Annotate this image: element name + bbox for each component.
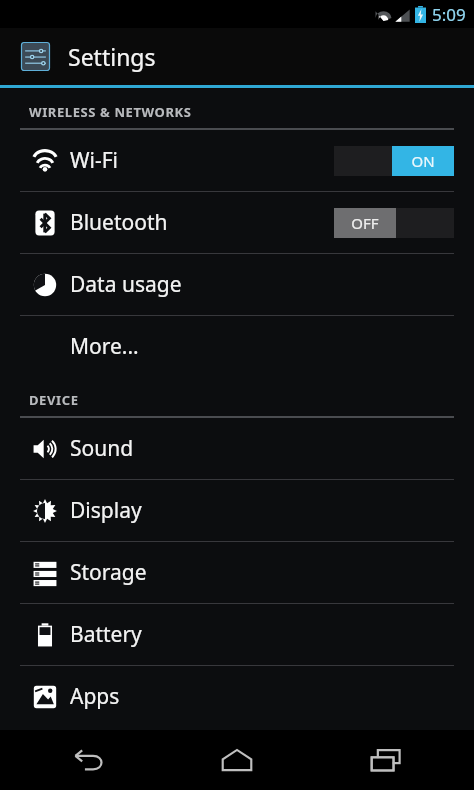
button[interactable]: Back: [29, 730, 149, 790]
staticText: ON: [411, 151, 435, 171]
staticText: Sound: [70, 434, 134, 463]
button[interactable]: Toggle on: [334, 146, 454, 176]
staticText: Storage: [70, 558, 147, 587]
button[interactable]: Home: [177, 730, 297, 790]
button[interactable]: More...: [0, 316, 474, 377]
button[interactable]: Wi-Fi: [0, 130, 474, 191]
staticText: DEVICE: [29, 391, 79, 409]
button[interactable]: Apps: [0, 666, 474, 727]
staticText: OFF: [351, 213, 379, 233]
button[interactable]: Data usage: [0, 254, 474, 315]
staticText: 5:09: [432, 3, 466, 26]
staticText: Display: [70, 496, 142, 525]
staticText: Wi-Fi: [70, 146, 119, 175]
button[interactable]: Settings: [0, 28, 474, 85]
staticText: Settings: [68, 41, 156, 72]
staticText: Battery: [70, 620, 142, 649]
button[interactable]: Sound: [0, 418, 474, 479]
button[interactable]: Recent apps: [326, 730, 446, 790]
staticText: More...: [70, 332, 139, 361]
button[interactable]: Toggle off: [334, 208, 454, 238]
button[interactable]: Storage: [0, 542, 474, 603]
staticText: Data usage: [70, 270, 182, 299]
staticText: WIRELESS & NETWORKS: [29, 103, 192, 121]
button[interactable]: Bluetooth: [0, 192, 474, 253]
button[interactable]: Display: [0, 480, 474, 541]
staticText: Apps: [70, 682, 120, 711]
staticText: Bluetooth: [70, 208, 168, 237]
button[interactable]: Battery: [0, 604, 474, 665]
